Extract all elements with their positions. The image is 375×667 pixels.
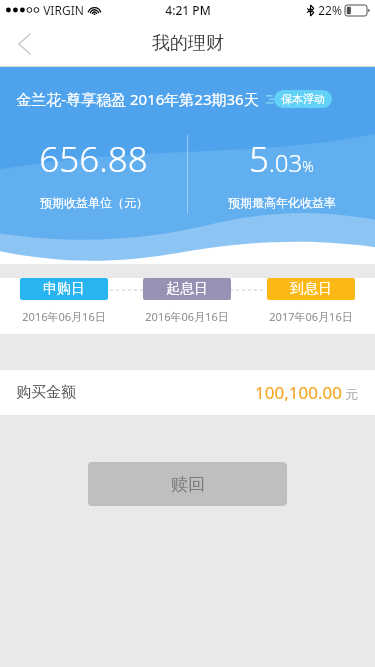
staticText: 购买金额 <box>16 383 76 402</box>
staticText: 2017年06月16日 <box>269 309 353 324</box>
button[interactable]: 到息日 <box>267 278 355 300</box>
staticText: VIRGIN <box>43 2 84 18</box>
staticText: 赎回 <box>171 474 205 495</box>
staticText: 22% <box>318 2 342 18</box>
staticText: 100,100.00 元 <box>255 381 359 404</box>
staticText: 4:21 PM <box>165 2 211 18</box>
staticText: 656.88 <box>39 135 148 183</box>
staticText: 2016年06月16日 <box>22 309 106 324</box>
staticText: 2016年06月16日 <box>145 309 229 324</box>
staticText: 5.03% <box>249 135 314 183</box>
staticText: 保本浮动 <box>281 92 325 106</box>
staticText: 起息日 <box>166 280 208 298</box>
staticText: 申购日 <box>43 280 85 298</box>
staticText: 预期收益单位（元） <box>40 195 148 210</box>
button[interactable]: 赎回 <box>88 462 287 506</box>
button[interactable]: 起息日 <box>143 278 231 300</box>
staticText: 我的理财 <box>152 32 224 55</box>
staticText: 金兰花-尊享稳盈 2016年第23期36天 <box>16 89 259 109</box>
staticText: 到息日 <box>290 280 332 298</box>
staticText: 预期最高年化收益率 <box>228 195 336 210</box>
button[interactable]: 申购日 <box>20 278 108 300</box>
button[interactable]: Back <box>0 20 48 67</box>
